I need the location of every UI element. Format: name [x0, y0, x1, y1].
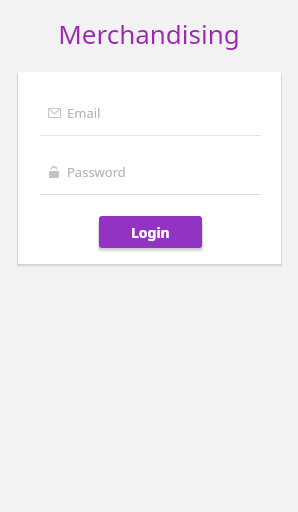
staticText: Merchandising: [0, 16, 298, 51]
staticText: Email: [67, 104, 101, 122]
staticText: Login: [131, 223, 170, 242]
button[interactable]: Login: [99, 216, 202, 248]
staticText: Password: [67, 163, 126, 181]
button[interactable]: Password field: [18, 161, 281, 183]
button[interactable]: Email field: [18, 102, 281, 124]
